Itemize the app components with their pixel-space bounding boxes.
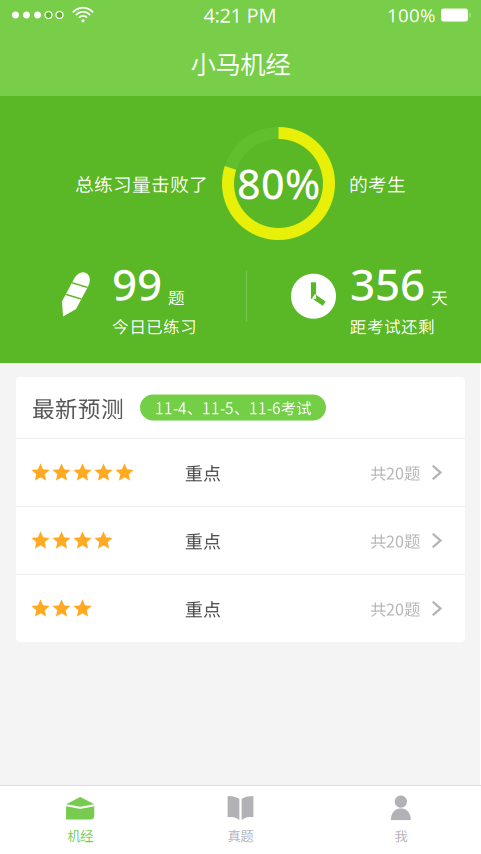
button[interactable]: 重点 xyxy=(16,507,465,574)
staticText: 最新预测 xyxy=(32,391,124,424)
staticText: 天 xyxy=(431,285,448,309)
staticText: 重点 xyxy=(185,459,221,486)
staticText: 真题 xyxy=(227,826,253,845)
staticText: 共20题 xyxy=(370,529,420,552)
button[interactable]: 重点 xyxy=(16,575,465,642)
button[interactable]: 机经 xyxy=(0,786,160,854)
staticText: 题 xyxy=(168,285,185,309)
staticText: 重点 xyxy=(185,595,221,622)
staticText: 重点 xyxy=(185,527,221,554)
staticText: 共20题 xyxy=(370,461,420,484)
staticText: 机经 xyxy=(67,826,93,845)
staticText: 距考试还剩 xyxy=(350,314,435,338)
button[interactable]: 我 xyxy=(321,786,481,854)
staticText: 小马机经 xyxy=(190,45,290,81)
staticText: 总练习量击败了 xyxy=(75,170,208,197)
staticText: 99 xyxy=(112,254,162,313)
staticText: 我 xyxy=(394,826,407,845)
staticText: 11-4、11-5、11-6考试 xyxy=(155,396,311,419)
staticText: 共20题 xyxy=(370,597,420,620)
staticText: 4:21 PM xyxy=(203,2,276,28)
button[interactable]: 真题 xyxy=(160,786,321,854)
button[interactable]: 重点 xyxy=(16,439,465,506)
staticText: 100% xyxy=(387,3,436,27)
staticText: 356 xyxy=(350,254,425,313)
staticText: 80% xyxy=(237,156,320,211)
staticText: 今日已练习 xyxy=(112,314,197,338)
staticText: 的考生 xyxy=(349,170,406,197)
